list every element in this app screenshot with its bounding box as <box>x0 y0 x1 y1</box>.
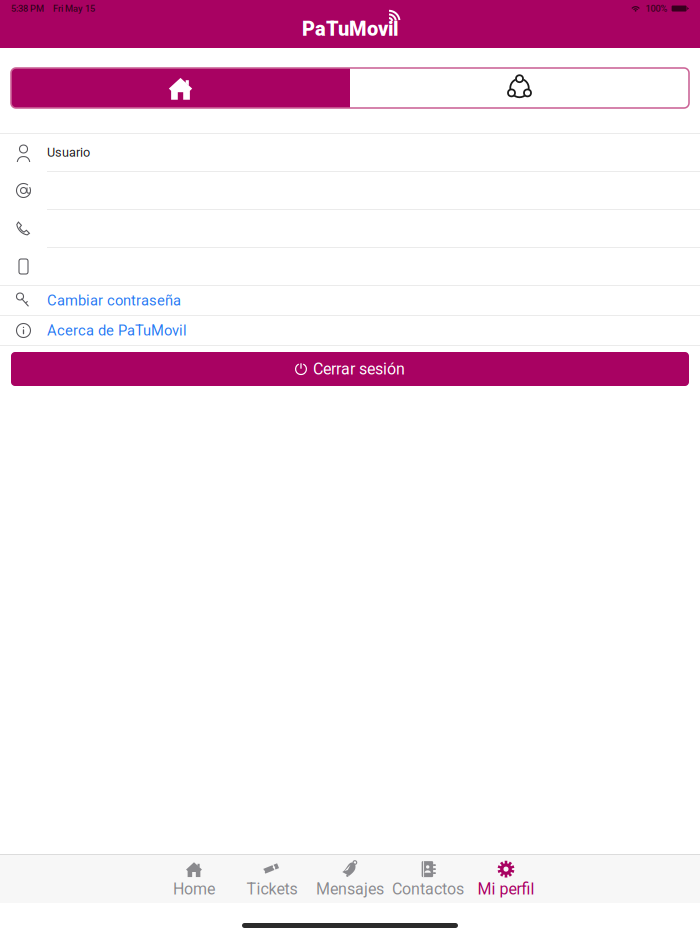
staticText: 5:38 PM <box>11 3 44 14</box>
button[interactable]: Cerrar sesión <box>0 352 700 386</box>
staticText: Tickets <box>246 880 297 898</box>
staticText: Usuario <box>47 145 90 160</box>
button[interactable]: Home <box>155 857 233 901</box>
button[interactable]: Mensajes <box>311 857 389 901</box>
staticText: Mi perfil <box>477 880 534 898</box>
staticText: Contactos <box>392 880 464 898</box>
staticText: Mensajes <box>316 880 384 898</box>
button[interactable]: Inicio <box>11 68 350 108</box>
staticText: PaTuMovil <box>302 17 398 41</box>
staticText: Home <box>173 880 215 898</box>
staticText: Cambiar contraseña <box>47 292 181 309</box>
button[interactable]: Tickets <box>233 857 311 901</box>
staticText: Fri May 15 <box>53 3 95 14</box>
button[interactable]: Acerca de PaTuMovil <box>0 316 700 345</box>
button[interactable]: Cambiar contraseña <box>0 286 700 315</box>
staticText: 100% <box>646 3 668 14</box>
staticText: Cerrar sesión <box>313 360 405 378</box>
button[interactable]: Contactos <box>389 857 467 901</box>
button[interactable]: Mi perfil <box>467 857 545 901</box>
button[interactable]: Compartir <box>350 68 689 108</box>
staticText: Acerca de PaTuMovil <box>47 322 187 339</box>
